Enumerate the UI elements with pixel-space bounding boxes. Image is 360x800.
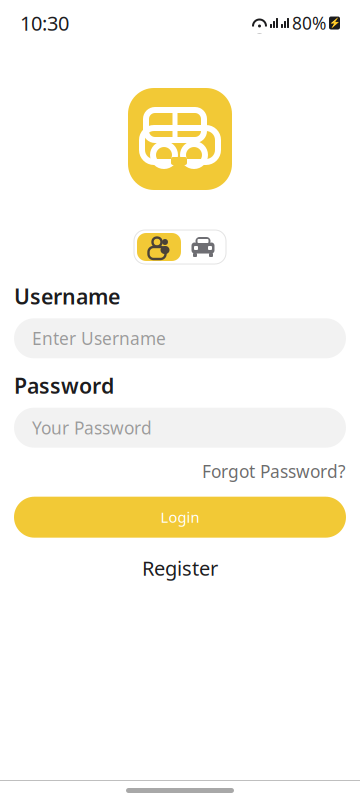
staticText: Enter Username bbox=[32, 327, 166, 350]
staticText: Your Password bbox=[32, 416, 152, 439]
staticText: Register bbox=[142, 555, 218, 581]
button[interactable]: Register bbox=[14, 555, 346, 581]
staticText: Forgot Password? bbox=[202, 460, 346, 483]
button[interactable]: Forgot Password? bbox=[14, 460, 346, 483]
staticText: Password bbox=[14, 371, 114, 400]
staticText: ⚡ bbox=[328, 18, 340, 28]
staticText: 80% bbox=[292, 11, 326, 34]
button[interactable]: Driver bbox=[182, 232, 224, 262]
staticText: 10:30 bbox=[20, 10, 69, 36]
staticText: Username bbox=[14, 282, 120, 310]
button[interactable]: Login bbox=[14, 497, 346, 538]
staticText: Login bbox=[160, 507, 199, 527]
button[interactable]: Passenger bbox=[136, 232, 182, 262]
